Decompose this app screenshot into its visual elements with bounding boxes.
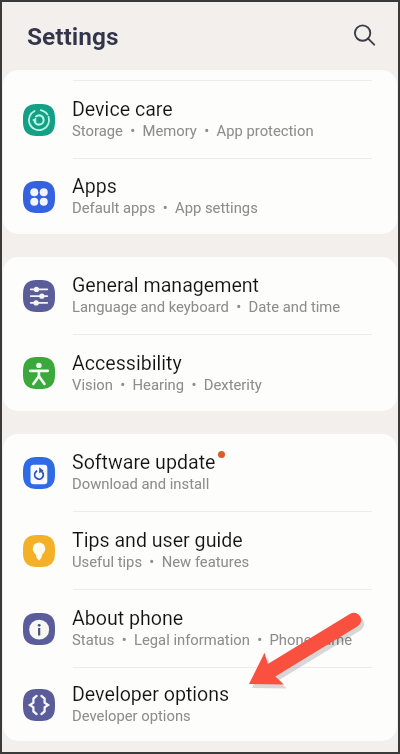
button[interactable]: Tips and user guide [3,512,397,589]
staticText: Accessibility [72,352,182,375]
staticText: About phone [72,607,184,630]
staticText: Settings [27,22,119,51]
staticText: Device care [72,98,173,121]
staticText: Default apps • App settings [72,199,258,216]
staticText: Useful tips • New features [72,553,250,570]
button[interactable]: Apps [3,159,397,234]
button[interactable]: About phone [3,590,397,667]
button[interactable]: Accessibility [3,335,397,411]
button[interactable]: General management [3,257,397,334]
button[interactable]: Device care [3,81,397,158]
button[interactable]: Developer options [3,668,397,741]
staticText: Tips and user guide [72,529,243,552]
staticText: Storage • Memory • App protection [72,122,314,139]
staticText: Developer options [72,683,230,706]
staticText: General management [72,274,260,297]
staticText: Vision • Hearing • Dexterity [72,376,262,393]
button[interactable]: Search [348,19,380,51]
staticText: Developer options [72,707,191,724]
staticText: Software update [72,451,216,474]
staticText: Apps [72,175,117,198]
button[interactable]: Software update [3,434,397,511]
staticText: Status • Legal information • Phone name [72,631,353,648]
staticText: Language and keyboard • Date and time [72,298,341,315]
staticText: Download and install [72,475,210,492]
